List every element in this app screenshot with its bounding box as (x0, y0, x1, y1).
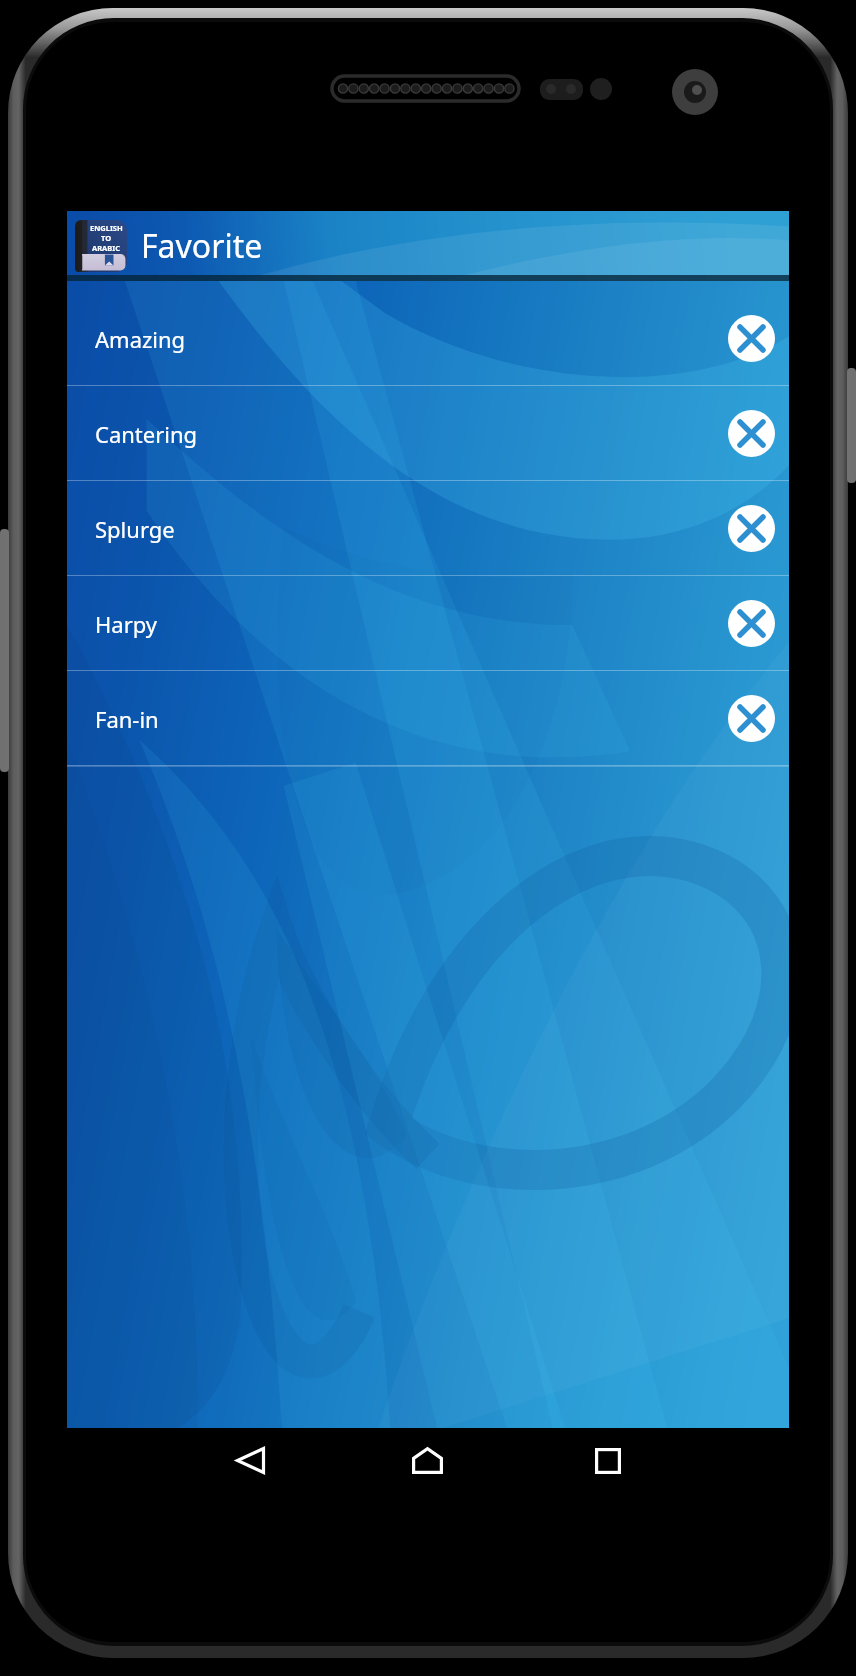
button[interactable]: Cantering (67, 386, 789, 481)
staticText: ARABIC (92, 243, 121, 253)
staticText: TO (101, 233, 112, 243)
button[interactable]: Remove Cantering (728, 410, 775, 457)
button[interactable]: Fan-in (67, 671, 789, 766)
staticText: ENGLISH (90, 223, 123, 233)
staticText: Harpy (95, 609, 158, 639)
button[interactable]: Recent apps (548, 1428, 668, 1493)
button[interactable]: Remove Fan-in (728, 695, 775, 742)
staticText: Splurge (95, 514, 175, 544)
button[interactable]: Splurge (67, 481, 789, 576)
button[interactable]: Remove Harpy (728, 600, 775, 647)
button[interactable]: Home (367, 1428, 487, 1493)
button[interactable]: Remove Splurge (728, 505, 775, 552)
button[interactable]: Remove Amazing (728, 315, 775, 362)
button[interactable]: Back (190, 1428, 310, 1493)
staticText: Favorite (141, 224, 263, 268)
staticText: Amazing (95, 324, 186, 354)
button[interactable]: Harpy (67, 576, 789, 671)
staticText: Cantering (95, 419, 198, 449)
staticText: Fan-in (95, 704, 159, 734)
button[interactable]: Amazing (67, 291, 789, 386)
